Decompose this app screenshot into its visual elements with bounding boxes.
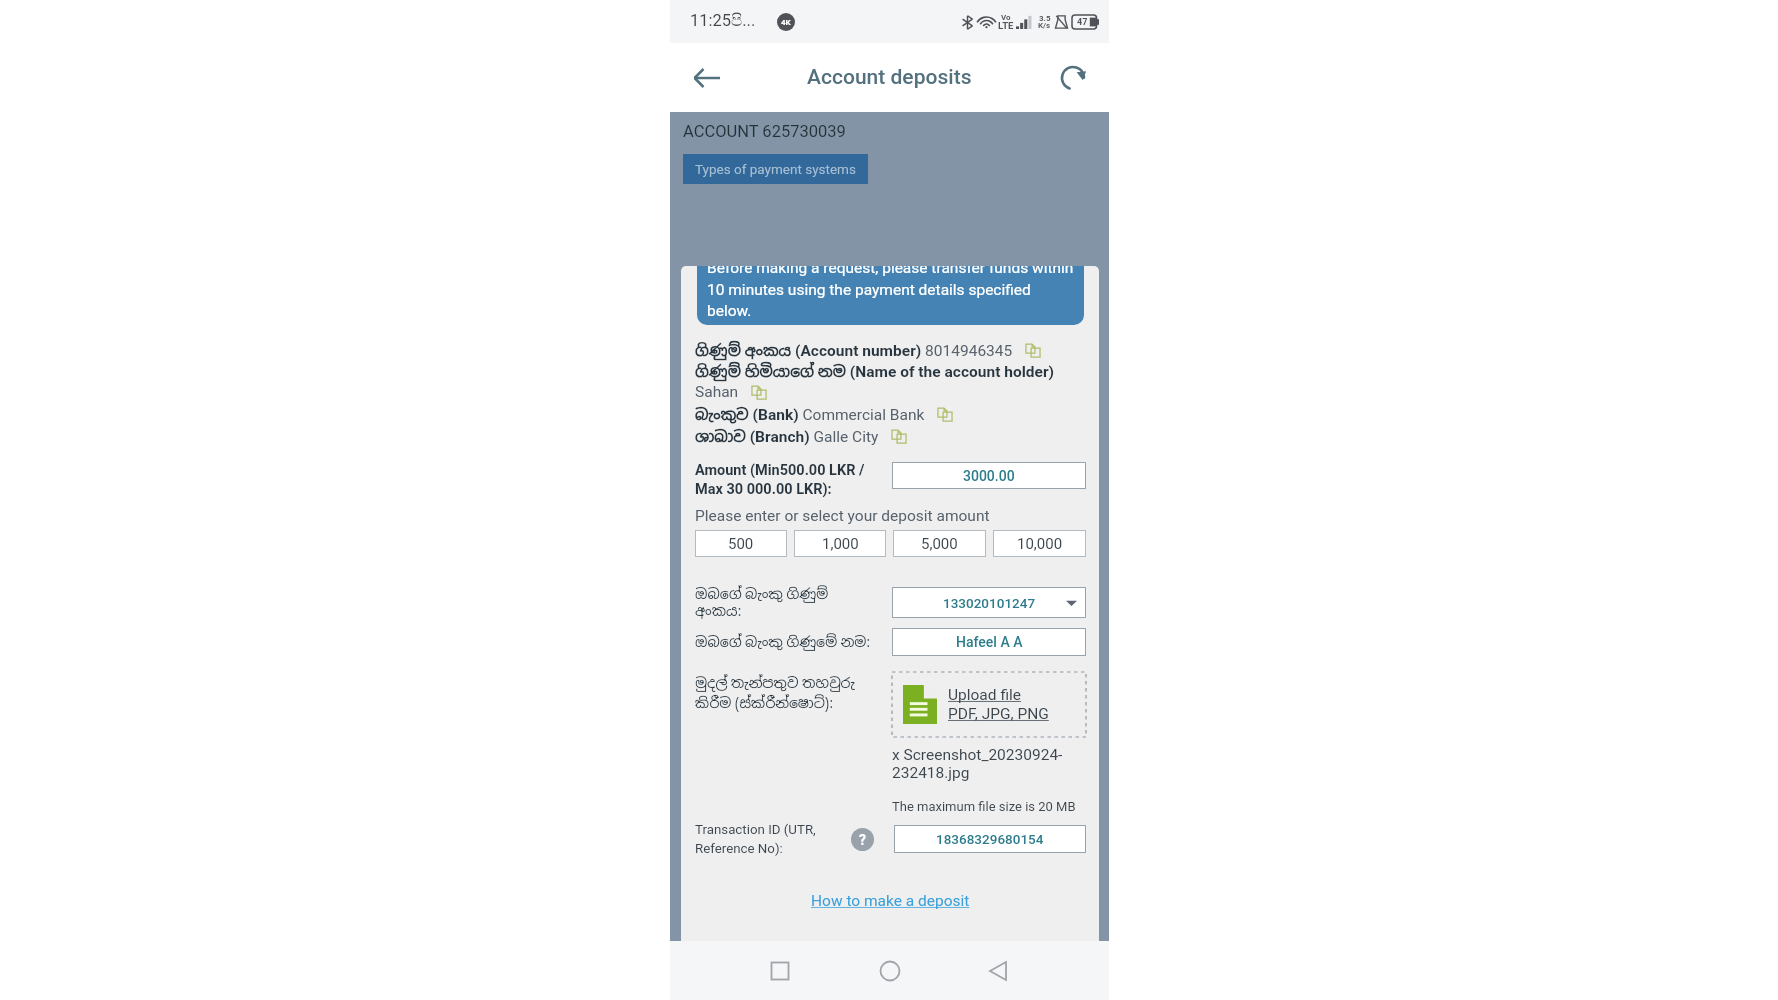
- button[interactable]: 10,000: [993, 530, 1086, 557]
- staticText: LTE: [998, 20, 1014, 31]
- staticText: 3000.00: [963, 468, 1015, 484]
- staticText: බැංකුව (Bank) Commercial Bank: [695, 404, 925, 424]
- staticText: The maximum file size is 20 MB: [892, 799, 1076, 814]
- button[interactable]: Recents: [762, 953, 798, 989]
- staticText: x Screenshot_20230924- 232418.jpg: [892, 746, 1063, 782]
- staticText: Hafeel A A: [956, 634, 1023, 650]
- staticText: 4K: [781, 18, 791, 27]
- button[interactable]: Help: [851, 828, 874, 851]
- staticText: 18368329680154: [936, 831, 1044, 847]
- button[interactable]: Back: [690, 61, 724, 95]
- button[interactable]: 18368329680154: [894, 825, 1086, 853]
- staticText: ඔබගේ බැංකු ගිණුම් අංකය:: [695, 585, 867, 620]
- button[interactable]: 1,000: [794, 530, 886, 557]
- button[interactable]: 133020101247: [892, 587, 1086, 618]
- staticText: ගිණුම් අංකය (Account number) 8014946345: [695, 340, 1013, 360]
- button[interactable]: Copy: [937, 406, 953, 422]
- button[interactable]: Hafeel A A: [892, 628, 1086, 656]
- button[interactable]: 3000.00: [892, 462, 1086, 489]
- button[interactable]: 500: [695, 530, 787, 557]
- staticText: Vo: [1001, 13, 1011, 22]
- button[interactable]: Types of payment systems: [683, 154, 868, 184]
- button[interactable]: 5,000: [893, 530, 986, 557]
- staticText: Upload file: [948, 686, 1021, 704]
- staticText: Please enter or select your deposit amou…: [695, 507, 990, 525]
- staticText: K/s: [1038, 21, 1051, 30]
- staticText: මුදල් තැන්පතුව තහවුරු කිරීම (ස්ක්රීන්ෂොට…: [695, 674, 867, 712]
- button[interactable]: Home: [872, 953, 908, 989]
- staticText: Before making a request, please transfer…: [707, 266, 1076, 318]
- button[interactable]: Back: [981, 953, 1017, 989]
- staticText: ACCOUNT 625730039: [683, 122, 846, 141]
- staticText: 47: [1077, 17, 1088, 28]
- button[interactable]: Copy: [891, 428, 907, 444]
- staticText: ශාඛාව (Branch) Galle City: [695, 426, 879, 446]
- button[interactable]: How to make a deposit: [811, 892, 970, 910]
- staticText: Account deposits: [807, 65, 972, 90]
- staticText: 3.5: [1039, 14, 1051, 23]
- staticText: Transaction ID (UTR, Reference No):: [695, 822, 851, 856]
- staticText: 10,000: [1017, 535, 1063, 553]
- staticText: 133020101247: [943, 595, 1036, 611]
- button[interactable]: Copy: [751, 384, 767, 400]
- button[interactable]: Refresh: [1056, 61, 1090, 95]
- staticText: Sahan: [695, 383, 739, 401]
- staticText: PDF, JPG, PNG: [948, 705, 1049, 723]
- staticText: 1,000: [822, 535, 859, 553]
- button[interactable]: Upload file: [892, 672, 1086, 737]
- button[interactable]: Copy: [1025, 342, 1041, 358]
- staticText: ඔබගේ බැංකු ගිණුමේ නම:: [695, 633, 871, 652]
- staticText: ගිණුම් හිමියාගේ නම (Name of the account …: [695, 361, 1055, 381]
- staticText: 500: [728, 535, 754, 553]
- staticText: 5,000: [921, 535, 958, 553]
- staticText: How to make a deposit: [811, 892, 970, 910]
- staticText: ?: [859, 832, 866, 848]
- staticText: Amount (Min500.00 LKR / Max 30 000.00 LK…: [695, 462, 892, 498]
- staticText: Types of payment systems: [695, 161, 856, 177]
- staticText: 11:25පි...: [690, 11, 756, 30]
